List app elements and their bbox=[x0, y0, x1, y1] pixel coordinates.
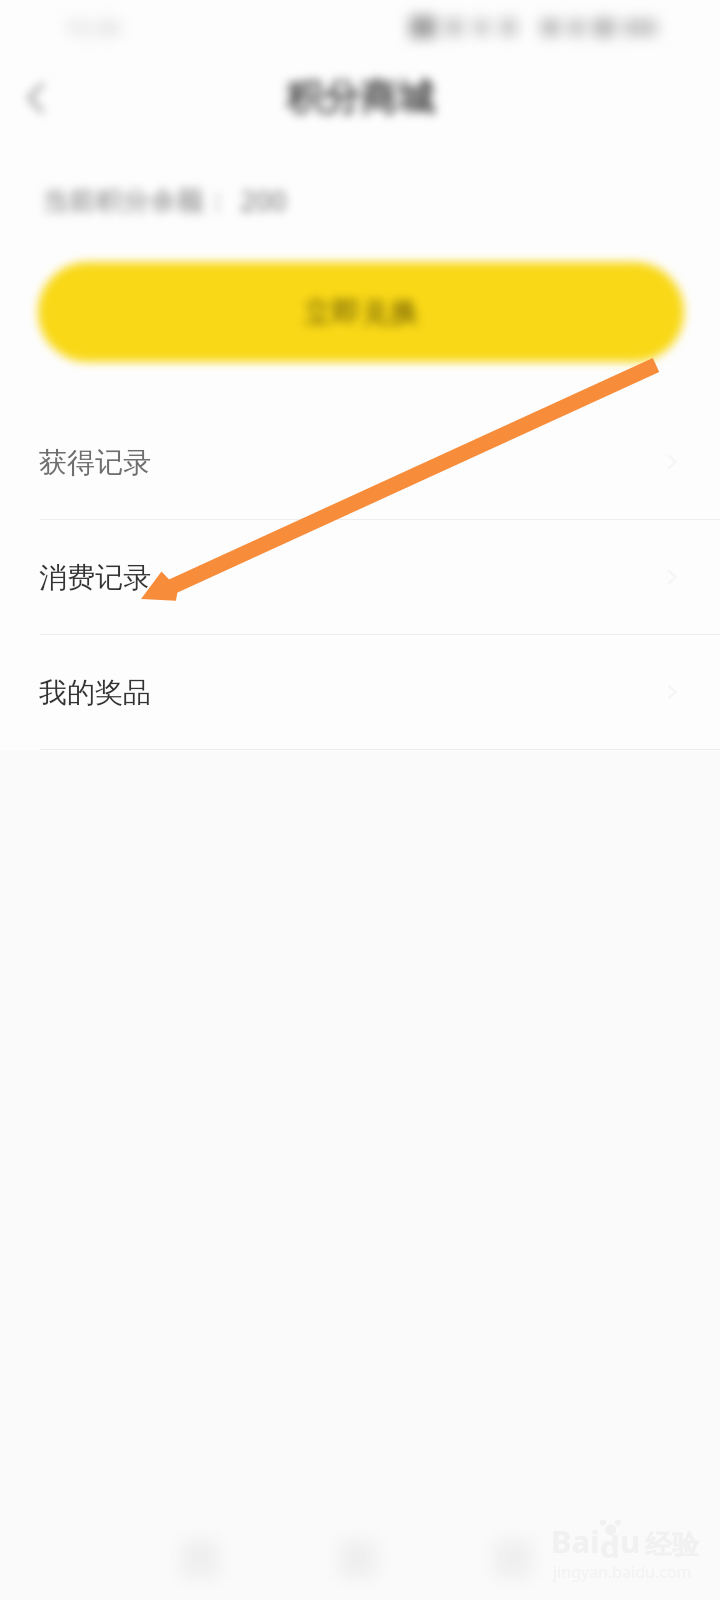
staticText: 经验 bbox=[645, 1528, 699, 1562]
staticText: 200 bbox=[240, 182, 287, 219]
staticText: Bai bbox=[551, 1520, 600, 1562]
button[interactable]: Back bbox=[14, 76, 58, 120]
button[interactable]: 我的奖品 bbox=[0, 635, 720, 749]
staticText: d bbox=[600, 1525, 620, 1567]
staticText: 获得记录 bbox=[39, 445, 151, 480]
staticText: 当前积分余额： bbox=[42, 184, 231, 218]
staticText: 15:30 bbox=[64, 12, 121, 42]
staticText: u bbox=[620, 1520, 641, 1562]
staticText: 我的奖品 bbox=[39, 675, 151, 710]
staticText: 消费记录 bbox=[39, 560, 151, 595]
staticText: 积分商城 bbox=[286, 74, 434, 121]
button[interactable]: 获得记录 bbox=[0, 405, 720, 519]
button[interactable]: 消费记录 bbox=[0, 520, 720, 634]
button[interactable]: 立即兑换 bbox=[38, 262, 684, 362]
staticText: 立即兑换 bbox=[303, 294, 419, 331]
